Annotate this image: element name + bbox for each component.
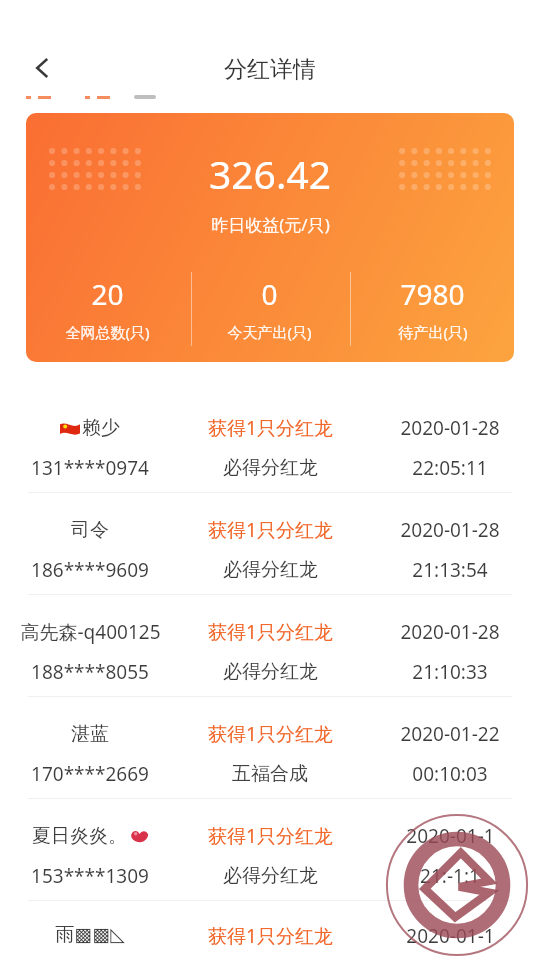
button[interactable]: 雨▩▩◺ [0, 901, 540, 958]
staticText: 21:-1:1 [420, 863, 480, 889]
staticText: 夏日炎炎。 [32, 824, 127, 848]
staticText: 高先森-q400125 [20, 619, 161, 645]
staticText: 必得分红龙 [223, 558, 318, 582]
staticText: 获得1只分红龙 [208, 619, 333, 645]
staticText: 21:13:54 [412, 557, 488, 583]
staticText: 全网总数(只) [65, 322, 150, 342]
button[interactable]: 7980 [351, 275, 514, 342]
staticText: 153****1309 [31, 863, 149, 889]
staticText: 00:10:03 [412, 761, 488, 787]
staticText: 188****8055 [31, 659, 149, 685]
staticText: 22:05:11 [412, 455, 488, 481]
staticText: 五福合成 [232, 762, 308, 786]
staticText: 获得1只分红龙 [208, 721, 333, 747]
staticText: 待产出(只) [398, 322, 468, 342]
staticText: 必得分红龙 [223, 456, 318, 480]
staticText: 0 [261, 275, 278, 313]
button[interactable]: Back [18, 44, 66, 92]
staticText: 昨日收益(元/只) [211, 213, 330, 236]
staticText: 获得1只分红龙 [208, 823, 333, 849]
staticText: 326.42 [209, 147, 331, 200]
staticText: 131****0974 [31, 455, 149, 481]
staticText: 湛蓝 [71, 722, 109, 746]
staticText: 分红详情 [224, 55, 316, 84]
button[interactable]: 20 [26, 275, 188, 342]
staticText: 20 [91, 275, 124, 313]
staticText: 雨▩▩◺ [55, 923, 125, 947]
staticText: 2020-01-28 [400, 517, 500, 543]
staticText: 2020-01-28 [400, 619, 500, 645]
button[interactable]: 司令 [0, 493, 540, 594]
button[interactable]: 高先森-q400125 [0, 595, 540, 696]
staticText: 司令 [71, 518, 109, 542]
staticText: 2020-01-1 [406, 923, 495, 949]
button[interactable]: 赖少 [0, 391, 540, 492]
staticText: 7980 [400, 275, 465, 313]
staticText: 获得1只分红龙 [208, 517, 333, 543]
button[interactable]: 夏日炎炎。 [0, 799, 540, 900]
button[interactable]: 0 [188, 275, 351, 342]
button[interactable]: 326.42 [26, 113, 514, 362]
staticText: 赖少 [82, 416, 120, 440]
button[interactable]: 湛蓝 [0, 697, 540, 798]
staticText: 2020-01-28 [400, 415, 500, 441]
staticText: 2020-01-22 [400, 721, 500, 747]
staticText: 获得1只分红龙 [208, 415, 333, 441]
staticText: 21:10:33 [412, 659, 488, 685]
staticText: 186****9609 [31, 557, 149, 583]
staticText: 今天产出(只) [227, 322, 312, 342]
staticText: 必得分红龙 [223, 660, 318, 684]
staticText: 170****2669 [31, 761, 149, 787]
staticText: 2020-01-1 [406, 823, 495, 849]
staticText: 必得分红龙 [223, 864, 318, 888]
staticText: 获得1只分红龙 [208, 923, 333, 949]
